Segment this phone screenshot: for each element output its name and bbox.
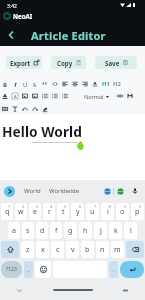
button[interactable]: ?123: [1, 261, 22, 278]
other: Emoji: [40, 266, 47, 273]
button[interactable]: Format: [60, 77, 70, 90]
button[interactable]: Languages: [114, 185, 126, 197]
button[interactable]: Translate: [101, 185, 113, 197]
button[interactable]: s: [22, 222, 34, 239]
button[interactable]: Format: [125, 90, 135, 102]
button[interactable]: Format: [20, 102, 30, 115]
button[interactable]: Format: [70, 77, 80, 90]
button[interactable]: r: [43, 203, 55, 220]
button[interactable]: Format: [20, 90, 30, 102]
button[interactable]: Format: [30, 102, 40, 115]
button[interactable]: Format: [60, 90, 70, 102]
button[interactable]: Format: [90, 77, 100, 90]
staticText: e: [33, 207, 37, 217]
button[interactable]: p: [131, 203, 144, 220]
button[interactable]: Format: [30, 90, 40, 102]
staticText: l: [130, 226, 132, 236]
staticText: H2: [113, 80, 121, 88]
staticText: d: [40, 226, 45, 236]
button[interactable]: Format: [0, 102, 10, 115]
staticText: ,: [28, 266, 30, 274]
button[interactable]: z: [21, 241, 34, 258]
staticText: Save: [105, 59, 120, 67]
button[interactable]: Export: [6, 56, 42, 69]
staticText: A: [14, 94, 17, 99]
staticText: g: [68, 226, 73, 236]
button[interactable]: g: [64, 222, 77, 239]
button[interactable]: Format: [10, 102, 20, 115]
button[interactable]: Format: [10, 90, 20, 102]
button[interactable]: c: [51, 241, 64, 258]
staticText: k: [114, 226, 118, 236]
staticText: World: [24, 187, 41, 195]
button[interactable]: Voice input: [129, 185, 141, 197]
button[interactable]: Format: [40, 102, 50, 115]
button[interactable]: Shift: [1, 241, 19, 258]
button[interactable]: Hide keyboard: [16, 287, 23, 294]
button[interactable]: Enter: [120, 261, 144, 278]
button[interactable]: Format: [40, 77, 50, 90]
staticText: c: [56, 245, 60, 255]
staticText: ?123: [6, 266, 17, 273]
staticText: z: [26, 245, 30, 255]
staticText: x: [41, 245, 45, 255]
button[interactable]: Format: [50, 90, 60, 102]
button[interactable]: Format: [0, 90, 10, 102]
button[interactable]: n: [96, 241, 109, 258]
staticText: 9: [124, 204, 127, 209]
button[interactable]: Copy: [51, 56, 86, 69]
button[interactable]: e: [29, 203, 41, 220]
button[interactable]: i: [101, 203, 114, 220]
button[interactable]: .: [109, 261, 118, 278]
button[interactable]: o: [116, 203, 129, 220]
button[interactable]: m: [111, 241, 124, 258]
button[interactable]: H2: [111, 77, 122, 90]
button[interactable]: Format: [20, 77, 30, 90]
button[interactable]: j: [94, 222, 107, 239]
button[interactable]: h: [79, 222, 92, 239]
staticText: n: [100, 245, 105, 255]
staticText: w: [18, 207, 24, 217]
button[interactable]: b: [81, 241, 94, 258]
button[interactable]: Format: [50, 77, 60, 90]
button[interactable]: y: [71, 203, 84, 220]
button[interactable]: x: [36, 241, 49, 258]
button[interactable]: u: [86, 203, 99, 220]
button[interactable]: H1: [100, 77, 111, 90]
button[interactable]: Keyboard settings: [122, 287, 129, 294]
button[interactable]: Worldwide: [49, 187, 80, 195]
button[interactable]: k: [109, 222, 122, 239]
staticText: t: [62, 207, 65, 217]
staticText: S: [33, 81, 37, 87]
button[interactable]: t: [57, 203, 69, 220]
staticText: 3: [36, 204, 39, 209]
button[interactable]: f: [50, 222, 62, 239]
button[interactable]: Format: [40, 90, 50, 102]
button[interactable]: Format: [115, 90, 125, 102]
staticText: u: [90, 207, 95, 217]
button[interactable]: World: [24, 187, 41, 195]
staticText: B: [3, 81, 7, 87]
staticText: 5: [64, 204, 67, 209]
button[interactable]: Format: [80, 77, 90, 90]
button[interactable]: w: [15, 203, 27, 220]
button[interactable]: Backspace: [126, 241, 144, 258]
button[interactable]: Back: [0, 24, 22, 46]
button[interactable]: Save: [95, 56, 137, 69]
button[interactable]: q: [1, 203, 13, 220]
button[interactable]: d: [36, 222, 48, 239]
button[interactable]: Format: [0, 77, 10, 90]
button[interactable]: Format: [30, 77, 40, 90]
button[interactable]: v: [66, 241, 79, 258]
button[interactable]: Emoji: [35, 261, 51, 278]
button[interactable]: Format: [10, 77, 20, 90]
button[interactable]: Normal: [84, 93, 109, 100]
staticText: r: [48, 207, 51, 217]
button[interactable]: a: [8, 222, 20, 239]
button[interactable]: More suggestions: [4, 186, 15, 197]
staticText: 3:42: [7, 3, 17, 10]
button[interactable]: ,: [24, 261, 33, 278]
staticText: o: [120, 207, 125, 217]
button[interactable]: l: [124, 222, 137, 239]
